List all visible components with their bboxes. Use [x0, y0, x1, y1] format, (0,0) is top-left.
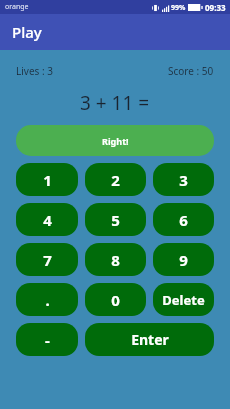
button[interactable]: Delete — [153, 283, 214, 316]
staticText: 0 — [111, 290, 120, 310]
staticText: 4 — [43, 210, 52, 230]
staticText: Play — [12, 22, 42, 42]
button[interactable]: . — [16, 283, 78, 316]
staticText: Delete — [162, 291, 205, 309]
staticText: Right! — [102, 135, 129, 147]
button[interactable]: - — [16, 323, 78, 356]
staticText: 7 — [43, 250, 52, 270]
button[interactable]: 6 — [153, 203, 214, 236]
staticText: Enter — [131, 330, 169, 349]
staticText: orange — [5, 2, 29, 12]
staticText: 8 — [111, 250, 120, 270]
button[interactable]: 9 — [153, 243, 214, 276]
button[interactable]: 2 — [85, 163, 146, 196]
staticText: 2 — [111, 170, 120, 190]
staticText: 6 — [179, 210, 188, 230]
staticText: 3 — [179, 170, 188, 190]
button[interactable]: 5 — [85, 203, 146, 236]
staticText: Lives : 3 — [16, 64, 53, 78]
button[interactable]: 1 — [16, 163, 78, 196]
staticText: 1 — [43, 170, 52, 190]
button[interactable]: Enter — [85, 323, 214, 356]
button[interactable]: 3 — [153, 163, 214, 196]
button[interactable]: Right! — [16, 125, 214, 156]
staticText: 99% — [171, 3, 186, 13]
staticText: 09:33 — [205, 2, 226, 13]
staticText: . — [45, 290, 50, 310]
staticText: - — [45, 330, 50, 350]
staticText: Score : 50 — [168, 64, 214, 78]
staticText: 3 + 11 = — [80, 90, 150, 116]
staticText: 9 — [179, 250, 188, 270]
staticText: 5 — [111, 210, 120, 230]
button[interactable]: 4 — [16, 203, 78, 236]
button[interactable]: 0 — [85, 283, 146, 316]
button[interactable]: 7 — [16, 243, 78, 276]
button[interactable]: 8 — [85, 243, 146, 276]
